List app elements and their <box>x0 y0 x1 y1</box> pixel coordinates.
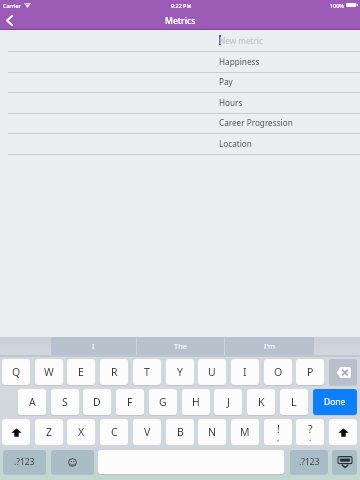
button[interactable]: A <box>18 389 46 415</box>
staticText: , <box>277 431 280 443</box>
staticText: L <box>291 395 297 409</box>
button[interactable]: D <box>83 389 111 415</box>
staticText: Career Progression <box>219 117 293 128</box>
staticText: C <box>111 425 118 439</box>
staticText: New metric <box>219 35 263 46</box>
button[interactable]: W <box>35 359 63 385</box>
staticText: A <box>29 395 36 409</box>
button[interactable]: ? <box>296 419 324 445</box>
button[interactable]: M <box>231 419 259 445</box>
staticText: Location <box>219 138 252 149</box>
staticText: G <box>159 395 167 409</box>
button[interactable]: F <box>116 389 144 415</box>
staticText: V <box>144 425 151 439</box>
staticText: U <box>208 365 216 379</box>
button[interactable]: Y <box>166 359 194 385</box>
staticText: N <box>208 425 216 439</box>
staticText: O <box>274 365 283 379</box>
staticText: I <box>243 365 247 379</box>
button[interactable]: Z <box>35 419 63 445</box>
button[interactable]: Q <box>2 359 30 385</box>
staticText: W <box>44 365 54 379</box>
staticText: The <box>174 341 188 351</box>
button[interactable]: H <box>182 389 210 415</box>
staticText: Metrics <box>165 15 196 27</box>
staticText: .?123 <box>14 456 35 468</box>
staticText: S <box>62 395 68 409</box>
staticText: Pay <box>219 76 233 87</box>
staticText: . <box>309 431 312 443</box>
staticText: 9:22 PM <box>171 2 192 9</box>
button[interactable]: ! <box>264 419 292 445</box>
button[interactable]: Location <box>0 134 360 155</box>
staticText: Carrier <box>3 2 21 9</box>
staticText: R <box>111 365 118 379</box>
button[interactable]: Hours <box>0 93 360 114</box>
button[interactable]: U <box>198 359 226 385</box>
button[interactable]: O <box>264 359 292 385</box>
button[interactable]: Shift <box>329 419 357 445</box>
staticText: 100% <box>330 2 344 9</box>
staticText: H <box>192 395 200 409</box>
button[interactable]: New metric <box>0 31 360 52</box>
button[interactable]: Career Progression <box>0 113 360 134</box>
button[interactable]: Hide keyboard <box>332 450 357 474</box>
button[interactable]: X <box>67 419 95 445</box>
button[interactable]: P <box>296 359 324 385</box>
staticText: M <box>240 425 250 439</box>
staticText: J <box>227 395 230 409</box>
button[interactable]: B <box>166 419 194 445</box>
button[interactable]: .?123 <box>290 450 328 474</box>
button[interactable]: Backspace <box>329 359 357 385</box>
staticText: K <box>258 395 265 409</box>
button[interactable]: J <box>214 389 242 415</box>
staticText: I <box>92 341 95 351</box>
button[interactable]: G <box>149 389 177 415</box>
staticText: B <box>177 425 184 439</box>
staticText: E <box>78 365 84 379</box>
staticText: I'm <box>264 341 276 351</box>
staticText: ? <box>308 422 313 436</box>
button[interactable]: .?123 <box>3 450 46 474</box>
button[interactable]: E <box>67 359 95 385</box>
staticText: Q <box>12 365 21 379</box>
button[interactable]: Done <box>313 389 357 415</box>
staticText: .?123 <box>299 456 320 468</box>
staticText: Z <box>46 425 53 439</box>
button[interactable]: K <box>247 389 275 415</box>
button[interactable]: I'm <box>225 337 314 355</box>
staticText: D <box>93 395 101 409</box>
button[interactable]: The <box>137 337 224 355</box>
button[interactable]: C <box>100 419 128 445</box>
staticText: ! <box>277 422 280 436</box>
staticText: F <box>127 395 133 409</box>
button[interactable]: Back <box>1 12 17 28</box>
staticText: Done <box>324 396 346 408</box>
button[interactable]: V <box>133 419 161 445</box>
button[interactable]: R <box>100 359 128 385</box>
button[interactable]: Shift <box>2 419 30 445</box>
staticText: T <box>144 365 150 379</box>
button[interactable]: I <box>231 359 259 385</box>
staticText: X <box>78 425 85 439</box>
staticText: P <box>307 365 314 379</box>
button[interactable]: Emoji <box>51 450 94 474</box>
button[interactable]: Pay <box>0 72 360 93</box>
button[interactable]: N <box>198 419 226 445</box>
staticText: Y <box>177 365 183 379</box>
button[interactable]: S <box>51 389 79 415</box>
button[interactable]: T <box>133 359 161 385</box>
staticText: Hours <box>219 97 243 108</box>
staticText: Happiness <box>219 56 260 67</box>
button[interactable]: I <box>51 337 136 355</box>
button[interactable]: L <box>280 389 308 415</box>
button[interactable]: Happiness <box>0 52 360 73</box>
